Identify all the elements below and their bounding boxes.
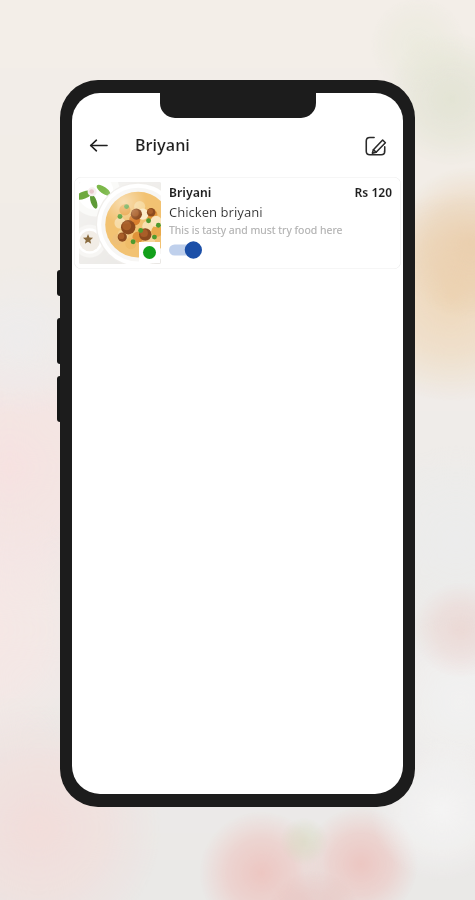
staticText: Rs 120 (354, 184, 392, 200)
staticText: Chicken briyani (169, 203, 263, 221)
button[interactable]: Back (78, 125, 118, 165)
button[interactable]: Briyani (74, 177, 401, 269)
button[interactable]: Edit (355, 125, 395, 165)
button[interactable]: Availability toggle (169, 241, 203, 259)
staticText: Briyani (169, 184, 212, 200)
staticText: This is tasty and must try food here (169, 223, 343, 237)
staticText: Briyani (135, 134, 190, 156)
